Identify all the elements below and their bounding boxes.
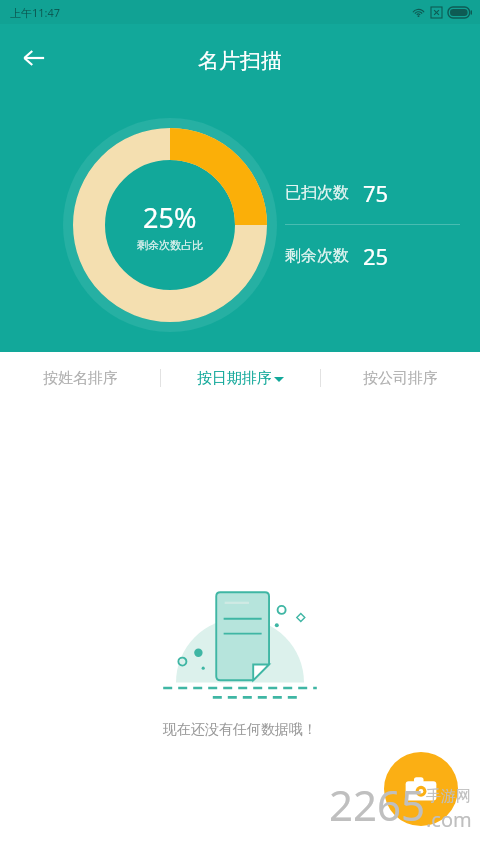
staticText: 剩余次数占比 [137, 238, 203, 252]
staticText: 剩余次数 [285, 246, 349, 266]
staticText: 按日期排序 [197, 369, 272, 388]
staticText: 按公司排序 [363, 369, 438, 388]
button[interactable]: 扫描名片 [384, 752, 458, 826]
staticText: 现在还没有任何数据哦！ [163, 721, 317, 739]
staticText: 75 [363, 178, 389, 208]
staticText: .com [426, 806, 472, 833]
staticText: 2265 [329, 776, 426, 833]
button[interactable]: 返回 [12, 36, 56, 80]
staticText: 25% [143, 199, 197, 236]
staticText: 上午11:47 [10, 5, 61, 20]
staticText: 已扫次数 [285, 183, 349, 203]
staticText: 25 [363, 241, 389, 271]
button[interactable]: 按日期排序 [161, 352, 320, 404]
staticText: 手游网 [426, 787, 471, 806]
staticText: 名片扫描 [198, 48, 282, 74]
staticText: 按姓名排序 [43, 369, 118, 388]
button[interactable]: 按姓名排序 [0, 352, 160, 404]
button[interactable]: 按公司排序 [321, 352, 480, 404]
